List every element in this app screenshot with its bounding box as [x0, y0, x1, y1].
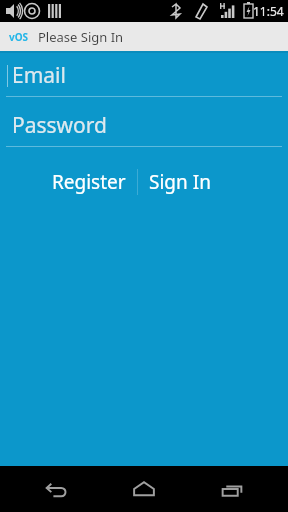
button[interactable]: Register	[46, 163, 132, 201]
button[interactable]: Password	[0, 111, 288, 147]
staticText: Register	[52, 169, 126, 195]
button[interactable]: Sign In	[143, 163, 217, 201]
staticText: Password	[12, 111, 107, 140]
button[interactable]: Email	[0, 61, 288, 97]
staticText: vOS	[9, 30, 29, 44]
staticText: Sign In	[149, 169, 211, 195]
staticText: 11:54	[253, 3, 284, 19]
staticText: Email	[12, 61, 66, 90]
staticText: Please Sign In	[38, 28, 124, 46]
button[interactable]: Recent apps	[200, 466, 264, 512]
button[interactable]: Home	[112, 466, 176, 512]
button[interactable]: Back	[24, 466, 88, 512]
